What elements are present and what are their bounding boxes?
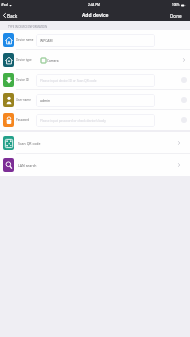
button[interactable]: Device name xyxy=(0,30,190,50)
staticText: admin xyxy=(40,98,51,103)
button[interactable]: admin xyxy=(36,94,155,107)
button[interactable]: Password xyxy=(0,110,190,130)
button[interactable]: WPCAM xyxy=(36,34,155,47)
button[interactable]: LAN search xyxy=(0,154,190,176)
staticText: Device ID xyxy=(16,78,36,82)
staticText: Device name xyxy=(16,38,36,42)
button[interactable]: Back xyxy=(0,10,22,21)
staticText: Add device xyxy=(82,12,109,19)
button[interactable]: Please input password or check device's … xyxy=(36,114,155,127)
button[interactable]: Help xyxy=(177,90,190,110)
button[interactable]: Please input device ID or Scan QR code xyxy=(36,74,155,87)
button[interactable]: Device ID xyxy=(0,70,190,90)
staticText: Scan QR code xyxy=(18,141,41,146)
staticText: Please input password or check device's … xyxy=(40,119,106,123)
staticText: Please input device ID or Scan QR code xyxy=(40,79,97,83)
staticText: Device type xyxy=(16,58,36,62)
staticText: Camera xyxy=(47,59,59,63)
staticText: Done xyxy=(170,13,182,19)
staticText: Password xyxy=(16,118,36,122)
staticText: Back xyxy=(7,13,18,19)
staticText: TYPE IN DEVICE INFORMATION xyxy=(8,25,47,29)
button[interactable]: Help xyxy=(177,70,190,90)
staticText: 2:44 PM xyxy=(88,3,101,7)
button[interactable]: Help xyxy=(177,110,190,130)
button[interactable]: Scan QR code xyxy=(0,132,190,154)
button[interactable]: Done xyxy=(166,10,190,21)
staticText: LAN search xyxy=(18,163,37,168)
button[interactable]: Camera xyxy=(41,57,59,64)
button[interactable]: Device type xyxy=(0,50,190,70)
staticText: User name xyxy=(16,98,36,102)
button[interactable]: User name xyxy=(0,90,190,110)
staticText: iPad xyxy=(1,3,8,7)
staticText: 100% xyxy=(172,3,180,7)
staticText: WPCAM xyxy=(40,38,53,43)
